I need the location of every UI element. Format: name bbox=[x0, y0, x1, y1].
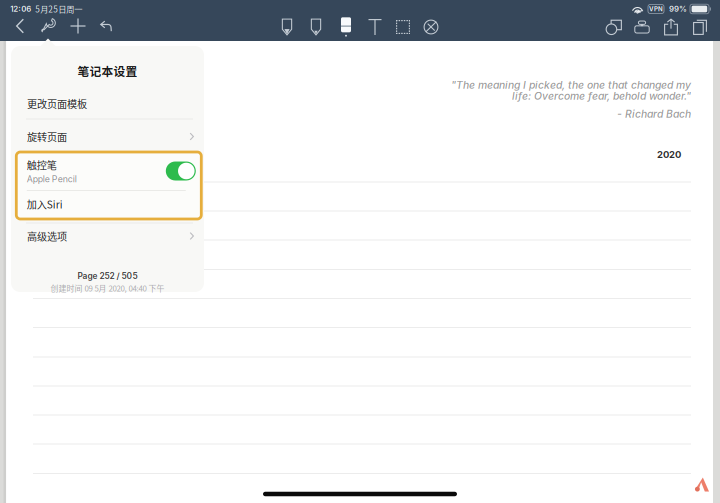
staticText: 笔记本设置 bbox=[77, 62, 137, 79]
staticText: 更改页面模板 bbox=[27, 96, 87, 111]
staticText: life: Overcome fear, behold wonder." bbox=[512, 90, 691, 102]
button[interactable]: Share bbox=[659, 15, 683, 39]
staticText: 12:06 bbox=[10, 4, 31, 14]
button[interactable]: Clear page bbox=[419, 15, 443, 39]
button[interactable]: Pages bbox=[688, 15, 712, 39]
button[interactable]: Shapes bbox=[602, 15, 626, 39]
button[interactable]: Add page bbox=[65, 13, 91, 39]
button[interactable]: Text bbox=[363, 15, 387, 39]
staticText: Apple Pencil bbox=[27, 174, 77, 184]
staticText: 加入Siri bbox=[27, 197, 63, 211]
button[interactable]: Pen bbox=[275, 15, 299, 39]
button[interactable]: Pencil bbox=[304, 15, 328, 39]
button[interactable]: Insert photo bbox=[630, 15, 654, 39]
staticText: Page 252 / 505 bbox=[77, 271, 137, 281]
button[interactable]: Selection bbox=[391, 15, 415, 39]
staticText: 高级选项 bbox=[27, 229, 67, 243]
staticText: 99% bbox=[669, 4, 687, 14]
staticText: - Richard Bach bbox=[617, 108, 691, 120]
button[interactable]: Eraser bbox=[334, 15, 358, 39]
button[interactable]: Undo bbox=[93, 13, 119, 39]
button[interactable]: Back bbox=[7, 13, 33, 39]
staticText: "The meaning I picked, the one that chan… bbox=[451, 79, 691, 91]
button[interactable]: Notebook settings bbox=[35, 13, 61, 39]
button[interactable]: 加入Siri bbox=[16, 191, 201, 217]
staticText: 2020 bbox=[657, 149, 681, 160]
button[interactable]: 触控笔 bbox=[16, 155, 201, 187]
staticText: VPN bbox=[649, 5, 663, 13]
button[interactable]: 更改页面模板 bbox=[11, 90, 204, 116]
button[interactable]: 高级选项 bbox=[11, 223, 204, 249]
staticText: 创建时间 09 5月 2020, 04:40 下午 bbox=[50, 282, 164, 294]
staticText: 旋转页面 bbox=[27, 129, 67, 144]
button[interactable]: 旋转页面 bbox=[11, 123, 204, 149]
staticText: 5月25日周一 bbox=[35, 3, 82, 15]
staticText: 触控笔 bbox=[27, 158, 57, 172]
